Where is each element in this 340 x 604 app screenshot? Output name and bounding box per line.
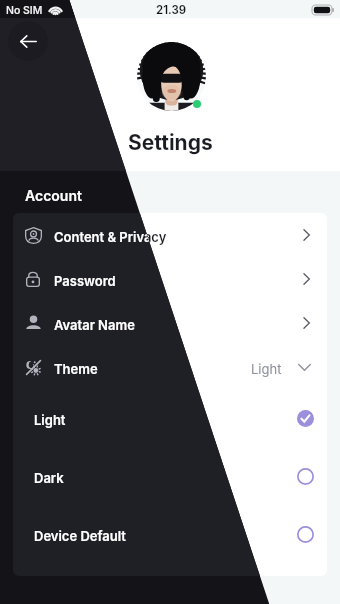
button[interactable]: Back [8, 21, 48, 61]
button[interactable]: Dark [13, 447, 327, 505]
staticText: Theme [54, 361, 98, 377]
button[interactable]: Device Default [13, 505, 327, 563]
staticText: Dark [34, 470, 64, 486]
button[interactable]: Content & Privacy [13, 213, 327, 257]
staticText: Light [251, 361, 282, 377]
staticText: No SIM [6, 4, 43, 17]
staticText: Account [25, 187, 82, 204]
staticText: Content & Privacy [54, 229, 167, 245]
staticText: Settings [128, 130, 213, 155]
button[interactable]: Light [13, 389, 327, 447]
button[interactable]: Password [13, 257, 327, 301]
staticText: No SIM [6, 4, 43, 17]
staticText: Dark [34, 470, 64, 486]
button[interactable]: Theme [13, 345, 327, 389]
staticText: Light [34, 412, 66, 428]
staticText: 21.39 [156, 3, 187, 17]
staticText: Light [251, 361, 282, 377]
staticText: Password [54, 273, 116, 289]
staticText: Device Default [34, 528, 126, 544]
staticText: Theme [54, 361, 98, 377]
button[interactable]: Back [8, 21, 48, 61]
button[interactable]: Content & Privacy [13, 213, 327, 257]
staticText: Light [34, 412, 66, 428]
button[interactable]: Password [13, 257, 327, 301]
staticText: Content & Privacy [54, 229, 167, 245]
staticText: 21.39 [156, 3, 187, 17]
staticText: Avatar Name [54, 317, 135, 333]
staticText: Settings [128, 130, 213, 155]
button[interactable]: Avatar Name [13, 301, 327, 345]
button[interactable]: Theme [13, 345, 327, 389]
staticText: Account [25, 187, 82, 204]
staticText: Password [54, 273, 116, 289]
button[interactable]: Dark [13, 447, 327, 505]
button[interactable]: Avatar Name [13, 301, 327, 345]
staticText: Avatar Name [54, 317, 135, 333]
button[interactable]: Light [13, 389, 327, 447]
button[interactable]: Device Default [13, 505, 327, 563]
staticText: Device Default [34, 528, 126, 544]
